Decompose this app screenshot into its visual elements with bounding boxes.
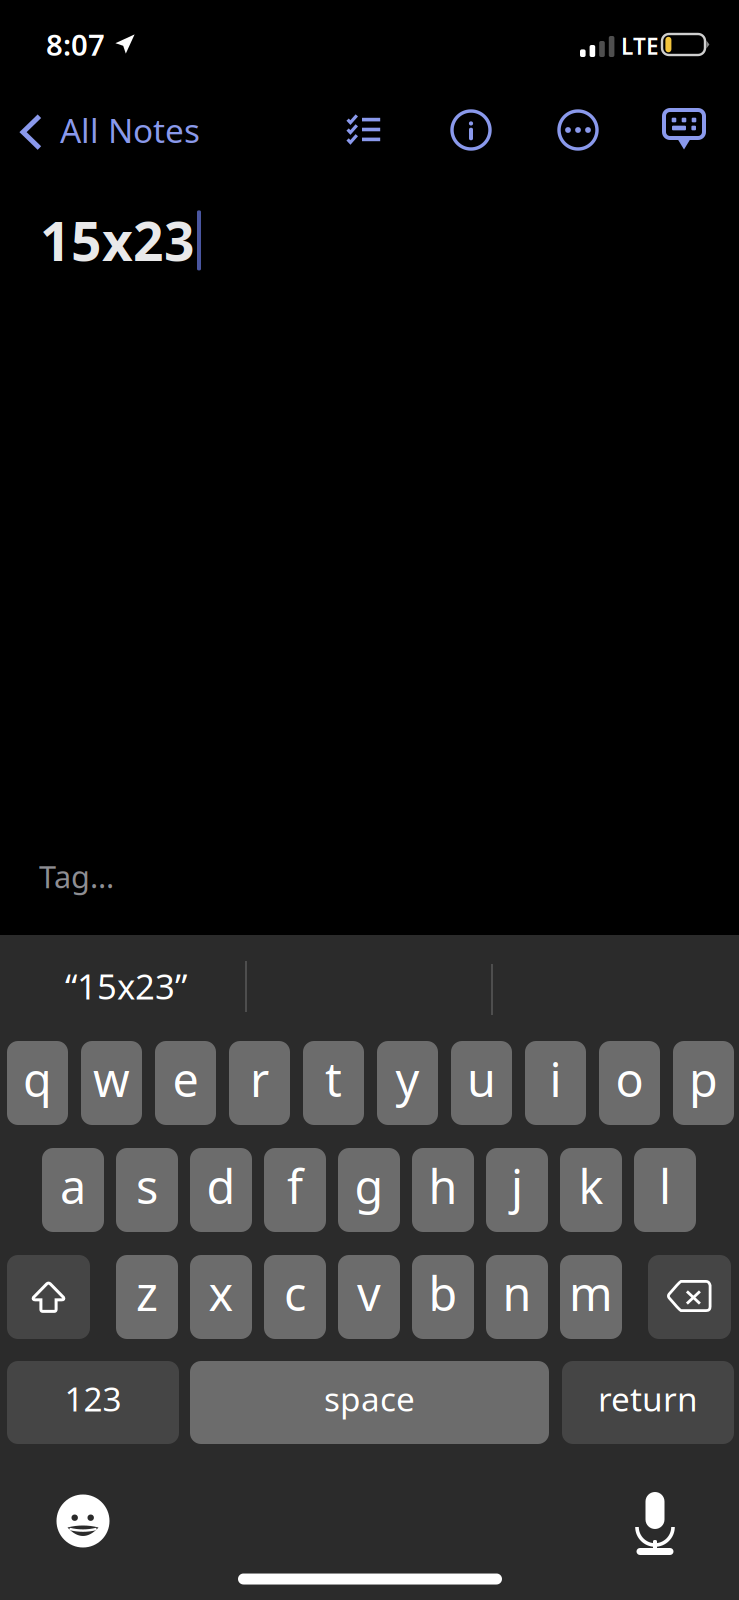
button[interactable]: c: [264, 1255, 326, 1339]
staticText: 123: [64, 1376, 121, 1421]
staticText: “15x23”: [65, 963, 187, 1009]
button[interactable]: space: [190, 1361, 549, 1444]
staticText: o: [615, 1048, 643, 1110]
button[interactable]: m: [560, 1255, 622, 1339]
staticText: t: [325, 1048, 342, 1110]
staticText: p: [689, 1048, 718, 1110]
button[interactable]: f: [264, 1148, 326, 1232]
staticText: e: [172, 1048, 198, 1110]
button[interactable]: r: [229, 1041, 290, 1125]
button[interactable]: l: [634, 1148, 696, 1232]
button[interactable]: Delete: [648, 1255, 731, 1339]
button[interactable]: o: [599, 1041, 660, 1125]
staticText: i: [549, 1048, 561, 1110]
button[interactable]: u: [451, 1041, 512, 1125]
button[interactable]: j: [486, 1148, 548, 1232]
staticText: s: [136, 1155, 158, 1217]
button[interactable]: g: [338, 1148, 400, 1232]
staticText: h: [428, 1155, 457, 1217]
button[interactable]: y: [377, 1041, 438, 1125]
staticText: j: [511, 1155, 523, 1217]
staticText: space: [324, 1376, 415, 1421]
staticText: r: [250, 1048, 269, 1110]
button[interactable]: Dictate: [635, 1492, 675, 1556]
staticText: return: [598, 1376, 698, 1421]
button[interactable]: q: [7, 1041, 68, 1125]
button[interactable]: k: [560, 1148, 622, 1232]
staticText: f: [287, 1155, 303, 1217]
staticText: n: [502, 1262, 531, 1324]
button[interactable]: t: [303, 1041, 364, 1125]
button[interactable]: Checklist: [334, 102, 394, 157]
button[interactable]: p: [673, 1041, 734, 1125]
button[interactable]: h: [412, 1148, 474, 1232]
button[interactable]: 123: [7, 1361, 179, 1444]
button[interactable]: n: [486, 1255, 548, 1339]
staticText: y: [395, 1048, 419, 1110]
button[interactable]: x: [190, 1255, 252, 1339]
button[interactable]: a: [42, 1148, 104, 1232]
staticText: w: [93, 1048, 130, 1110]
staticText: g: [354, 1155, 383, 1217]
button[interactable]: Hide Keyboard: [653, 99, 715, 161]
button[interactable]: More Options: [547, 99, 609, 161]
button[interactable]: b: [412, 1255, 474, 1339]
staticText: l: [659, 1155, 671, 1217]
button[interactable]: w: [81, 1041, 142, 1125]
button[interactable]: v: [338, 1255, 400, 1339]
staticText: c: [284, 1262, 306, 1324]
staticText: q: [23, 1048, 52, 1110]
staticText: z: [136, 1262, 158, 1324]
staticText: 8:07: [46, 25, 105, 64]
staticText: k: [578, 1155, 603, 1217]
button[interactable]: z: [116, 1255, 178, 1339]
button[interactable]: Emoji: [56, 1494, 109, 1547]
button[interactable]: return: [562, 1361, 734, 1444]
staticText: 15x23: [40, 205, 195, 276]
staticText: d: [206, 1155, 235, 1217]
button[interactable]: All Notes: [0, 101, 214, 163]
staticText: u: [467, 1048, 496, 1110]
staticText: All Notes: [60, 108, 200, 152]
button[interactable]: e: [155, 1041, 216, 1125]
staticText: m: [569, 1262, 613, 1324]
staticText: x: [208, 1262, 233, 1324]
button[interactable]: Info: [440, 99, 502, 161]
staticText: b: [428, 1262, 457, 1324]
staticText: a: [60, 1155, 86, 1217]
staticText: v: [357, 1262, 381, 1324]
staticText: Tag...: [39, 856, 114, 897]
button[interactable]: i: [525, 1041, 586, 1125]
button[interactable]: s: [116, 1148, 178, 1232]
button[interactable]: Shift: [7, 1255, 90, 1339]
button[interactable]: d: [190, 1148, 252, 1232]
staticText: LTE: [621, 31, 659, 61]
